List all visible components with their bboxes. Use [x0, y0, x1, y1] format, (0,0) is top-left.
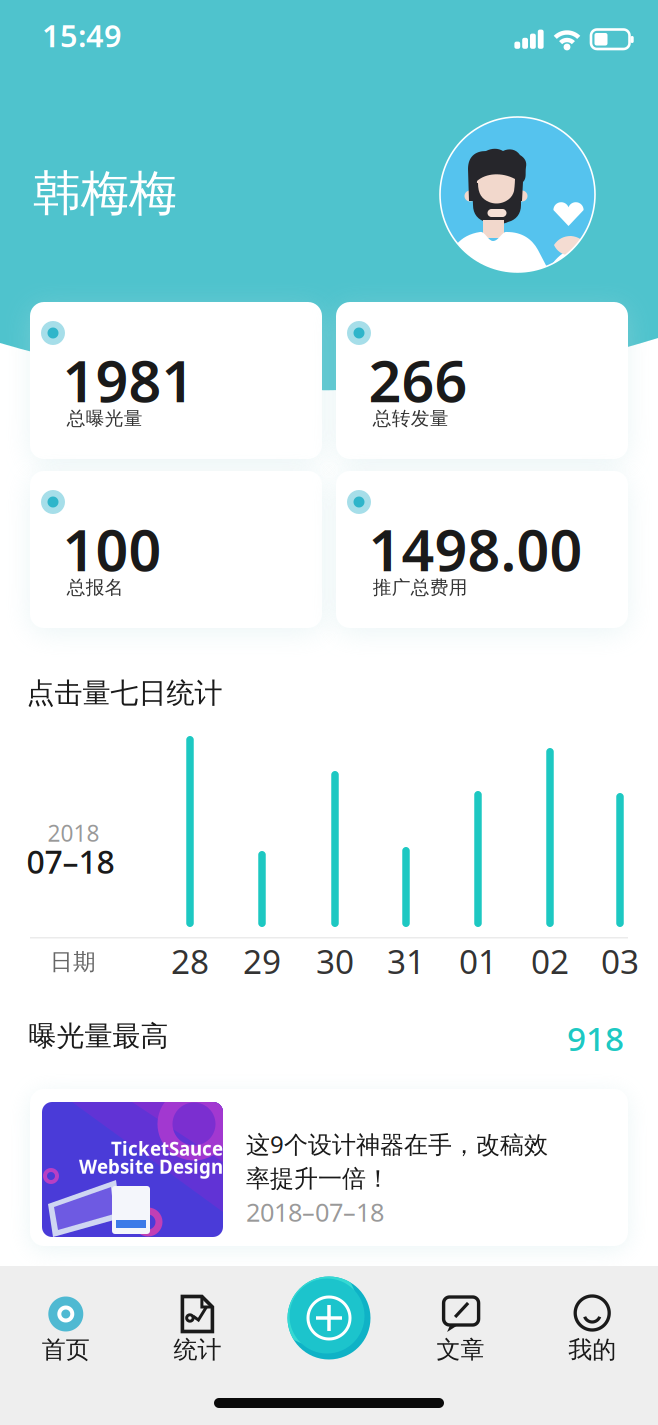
staticText: 07–18 [26, 840, 114, 882]
staticText: 率提升一倍！ [246, 1164, 390, 1193]
staticText: 韩梅梅 [33, 164, 177, 223]
button[interactable]: 1981 [30, 302, 322, 459]
staticText: 01 [459, 939, 497, 983]
button[interactable]: 首页 [0, 1266, 132, 1406]
button[interactable]: TicketSauce [30, 1089, 628, 1246]
staticText: 日期 [50, 948, 96, 976]
button[interactable]: 100 [30, 471, 322, 628]
staticText: 03 [601, 939, 639, 983]
staticText: 266 [368, 342, 467, 418]
staticText: 31 [387, 939, 425, 983]
staticText: 曝光量最高 [28, 1019, 168, 1053]
button[interactable]: 我的 [526, 1266, 658, 1406]
staticText: 首页 [42, 1335, 90, 1364]
button[interactable]: 统计 [132, 1266, 263, 1406]
staticText: 100 [62, 511, 161, 587]
button[interactable] [440, 117, 595, 272]
button[interactable]: 文章 [395, 1266, 526, 1406]
button[interactable]: 266 [336, 302, 628, 459]
staticText: 总曝光量 [67, 407, 143, 430]
staticText: 2018 [47, 818, 99, 848]
staticText: 总报名 [67, 576, 124, 599]
staticText: 28 [171, 939, 209, 983]
staticText: 点击量七日统计 [26, 676, 222, 710]
staticText: TicketSauce [111, 1136, 223, 1161]
staticText: 918 [567, 1016, 624, 1060]
staticText: 1981 [62, 342, 194, 418]
staticText: 我的 [568, 1335, 616, 1364]
staticText: 30 [316, 939, 354, 983]
staticText: 1498.00 [368, 511, 582, 587]
staticText: 统计 [173, 1335, 221, 1364]
staticText: 29 [243, 939, 281, 983]
staticText: 02 [531, 939, 569, 983]
staticText: 总转发量 [373, 407, 449, 430]
staticText: Website Design [79, 1154, 223, 1179]
staticText: 文章 [437, 1335, 485, 1364]
staticText: 2018–07–18 [246, 1195, 384, 1229]
staticText: 这9个设计神器在手，改稿效 [246, 1128, 548, 1160]
button[interactable]: 1498.00 [336, 471, 628, 628]
staticText: 推广总费用 [373, 576, 468, 599]
button[interactable] [287, 1276, 370, 1359]
staticText: 15:49 [42, 15, 122, 56]
